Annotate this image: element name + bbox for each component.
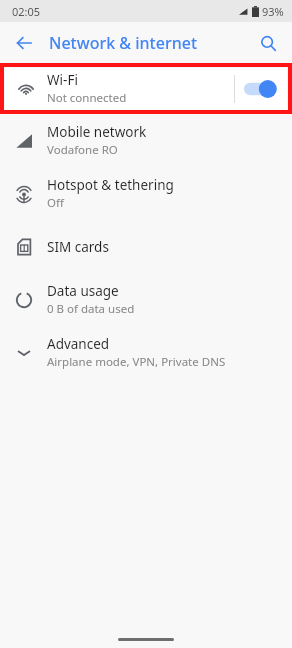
button[interactable]: SIM cards — [0, 220, 292, 273]
staticText: 0 B of data used — [47, 301, 135, 317]
staticText: Data usage — [47, 282, 119, 300]
button[interactable]: Wi-Fi — [5, 68, 287, 109]
button[interactable]: Advanced — [0, 326, 292, 379]
staticText: 93% — [262, 4, 284, 19]
staticText: Airplane mode, VPN, Private DNS — [47, 354, 226, 370]
button[interactable]: Back — [6, 25, 42, 61]
staticText: Not connected — [47, 90, 127, 106]
staticText: Advanced — [47, 335, 110, 353]
staticText: SIM cards — [47, 238, 109, 256]
staticText: 02:05 — [12, 4, 41, 19]
staticText: Mobile network — [47, 123, 147, 141]
staticText: Vodafone RO — [47, 142, 118, 158]
button[interactable]: Wi-Fi toggle — [235, 69, 287, 109]
button[interactable]: Mobile network — [0, 114, 292, 167]
staticText: Off — [47, 195, 64, 211]
button[interactable]: Search — [250, 25, 286, 61]
staticText: Wi-Fi — [47, 71, 78, 89]
staticText: Network & internet — [49, 32, 198, 54]
button[interactable]: Data usage — [0, 273, 292, 326]
staticText: Hotspot & tethering — [47, 176, 174, 194]
button[interactable]: Hotspot & tethering — [0, 167, 292, 220]
